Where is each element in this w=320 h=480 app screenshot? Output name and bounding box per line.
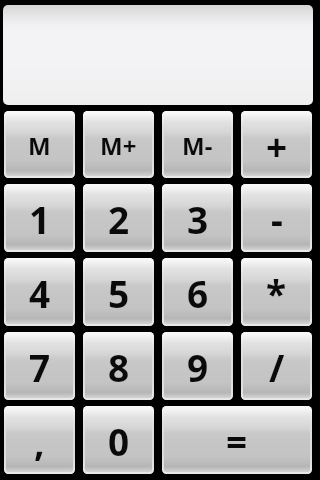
staticText: 5	[108, 268, 130, 318]
button[interactable]: 6	[162, 258, 233, 326]
staticText: ,	[34, 416, 45, 466]
staticText: 2	[108, 194, 130, 244]
staticText: 3	[187, 194, 209, 244]
staticText: -	[271, 194, 283, 244]
button[interactable]: 4	[4, 258, 75, 326]
button[interactable]: Multiply	[241, 258, 312, 326]
button[interactable]: Minus	[241, 184, 312, 252]
button[interactable]: Equals	[162, 406, 312, 474]
staticText: 7	[29, 342, 51, 392]
staticText: 8	[108, 342, 130, 392]
button[interactable]: 8	[83, 332, 154, 400]
button[interactable]: Divide	[241, 332, 312, 400]
staticText: 1	[29, 194, 51, 244]
staticText: M+	[100, 129, 137, 162]
staticText: *	[266, 268, 287, 318]
button[interactable]: 0	[83, 406, 154, 474]
button[interactable]: Plus	[241, 111, 312, 178]
button[interactable]: 9	[162, 332, 233, 400]
button[interactable]: Memory recall	[4, 111, 75, 178]
button[interactable]: 5	[83, 258, 154, 326]
button[interactable]: 7	[4, 332, 75, 400]
staticText: +	[266, 121, 288, 171]
button[interactable]: Display	[3, 5, 313, 105]
staticText: /	[269, 342, 285, 392]
staticText: M-	[182, 129, 213, 162]
button[interactable]: Decimal separator	[4, 406, 75, 474]
button[interactable]: 3	[162, 184, 233, 252]
staticText: 9	[187, 342, 209, 392]
staticText: 6	[187, 268, 209, 318]
button[interactable]: Memory add	[83, 111, 154, 178]
staticText: 4	[29, 268, 51, 318]
staticText: 0	[108, 416, 130, 466]
button[interactable]: Memory subtract	[162, 111, 233, 178]
button[interactable]: 1	[4, 184, 75, 252]
button[interactable]: 2	[83, 184, 154, 252]
staticText: M	[28, 129, 51, 162]
staticText: =	[226, 416, 248, 466]
